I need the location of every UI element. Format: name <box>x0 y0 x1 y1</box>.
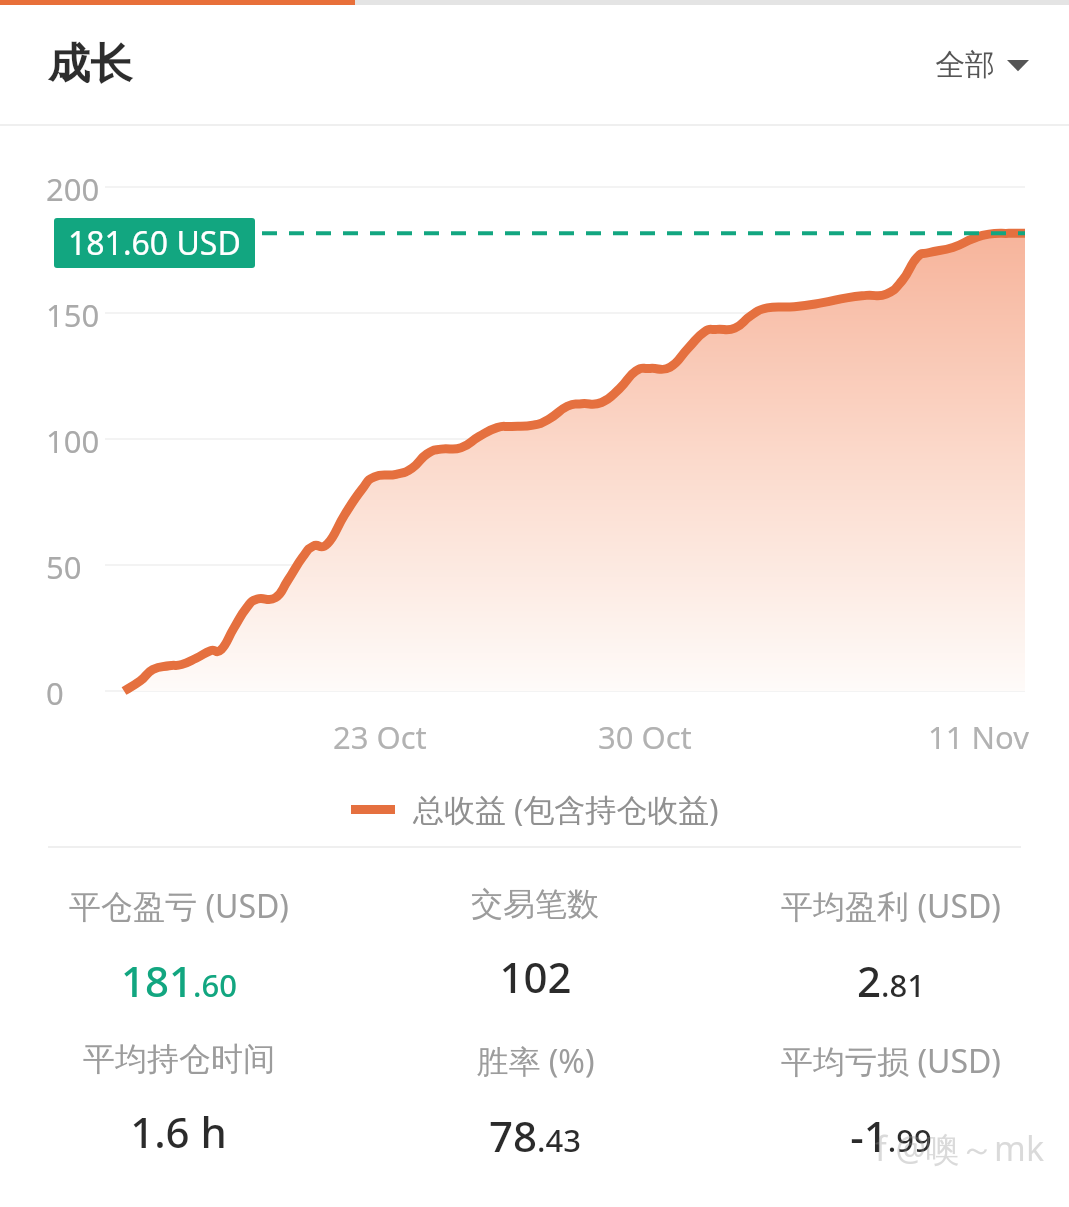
staticText: 100 <box>46 420 100 462</box>
button[interactable]: 平均持仓时间 <box>0 1039 357 1160</box>
button[interactable]: 胜率 (%) <box>357 1039 713 1164</box>
staticText: 50 <box>46 546 82 588</box>
staticText: 平仓盈亏 (USD) <box>69 884 289 928</box>
staticText: 23 Oct <box>333 716 427 758</box>
button[interactable]: 交易笔数 <box>357 884 713 1005</box>
staticText: 全部 <box>935 46 995 84</box>
staticText: f @噢～mk <box>875 1125 1045 1171</box>
button[interactable]: 全部 <box>925 36 1039 94</box>
staticText: 总收益 (包含持仓收益) <box>413 788 719 830</box>
staticText: 30 Oct <box>598 716 692 758</box>
button[interactable]: 平均盈利 (USD) <box>713 884 1069 1009</box>
staticText: 11 Nov <box>928 716 1029 758</box>
staticText: 181.60 USD <box>68 221 241 265</box>
staticText: 150 <box>46 294 100 336</box>
staticText: 交易笔数 <box>471 884 599 924</box>
button[interactable]: Current total profit 181.60 USD <box>54 218 255 268</box>
staticText: 平均亏损 (USD) <box>781 1039 1001 1083</box>
button[interactable]: 平均亏损 (USD) <box>713 1039 1069 1164</box>
staticText: 平均盈利 (USD) <box>781 884 1001 928</box>
staticText: 胜率 (%) <box>476 1039 595 1083</box>
staticText: 2.81 <box>857 952 925 1009</box>
button[interactable]: 平仓盈亏 (USD) <box>0 884 357 1009</box>
staticText: 102 <box>499 948 572 1005</box>
staticText: 0 <box>46 672 64 714</box>
staticText: -1.99 <box>850 1107 932 1164</box>
staticText: 200 <box>46 168 100 210</box>
staticText: 平均持仓时间 <box>83 1039 275 1079</box>
staticText: 78.43 <box>489 1107 581 1164</box>
staticText: 成长 <box>48 38 132 91</box>
staticText: 181.60 <box>121 952 237 1009</box>
staticText: 1.6 h <box>130 1103 227 1160</box>
